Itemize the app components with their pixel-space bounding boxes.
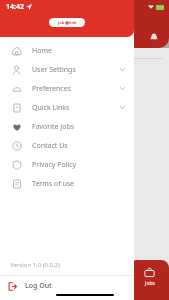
staticText: Favorite Jobs xyxy=(32,122,75,132)
staticText: Jobs xyxy=(145,280,155,287)
staticText: Terms of use xyxy=(32,179,75,189)
button[interactable]: Home xyxy=(0,41,134,60)
staticText: Version 1.0 (0.0.2) xyxy=(10,261,60,269)
staticText: job xyxy=(58,20,65,25)
staticText: History xyxy=(6,67,34,78)
staticText: Log Out xyxy=(25,281,52,291)
button[interactable]: Favorite Jobs xyxy=(0,117,134,136)
staticText: Contact Us xyxy=(32,141,68,151)
button[interactable]: Jobs xyxy=(144,267,155,287)
button[interactable]: Contact Us xyxy=(0,136,134,155)
button[interactable]: Privacy Policy xyxy=(0,155,134,174)
button[interactable]: Preferences xyxy=(0,79,134,98)
staticText: User Settings xyxy=(32,65,76,75)
button[interactable]: User Settings xyxy=(0,60,134,79)
button[interactable]: Quick Links xyxy=(0,98,134,117)
staticText: Quick Links xyxy=(32,103,70,113)
button[interactable]: Terms of use xyxy=(0,174,134,193)
staticText: 14:42 xyxy=(6,2,24,12)
staticText: Home xyxy=(32,46,52,56)
staticText: link xyxy=(69,20,77,25)
button[interactable]: Log Out xyxy=(0,276,134,296)
staticText: Privacy Policy xyxy=(32,160,77,170)
button[interactable]: Notifications xyxy=(149,32,159,42)
button[interactable]: Profile xyxy=(2,110,37,126)
staticText: Preferences xyxy=(32,84,71,94)
